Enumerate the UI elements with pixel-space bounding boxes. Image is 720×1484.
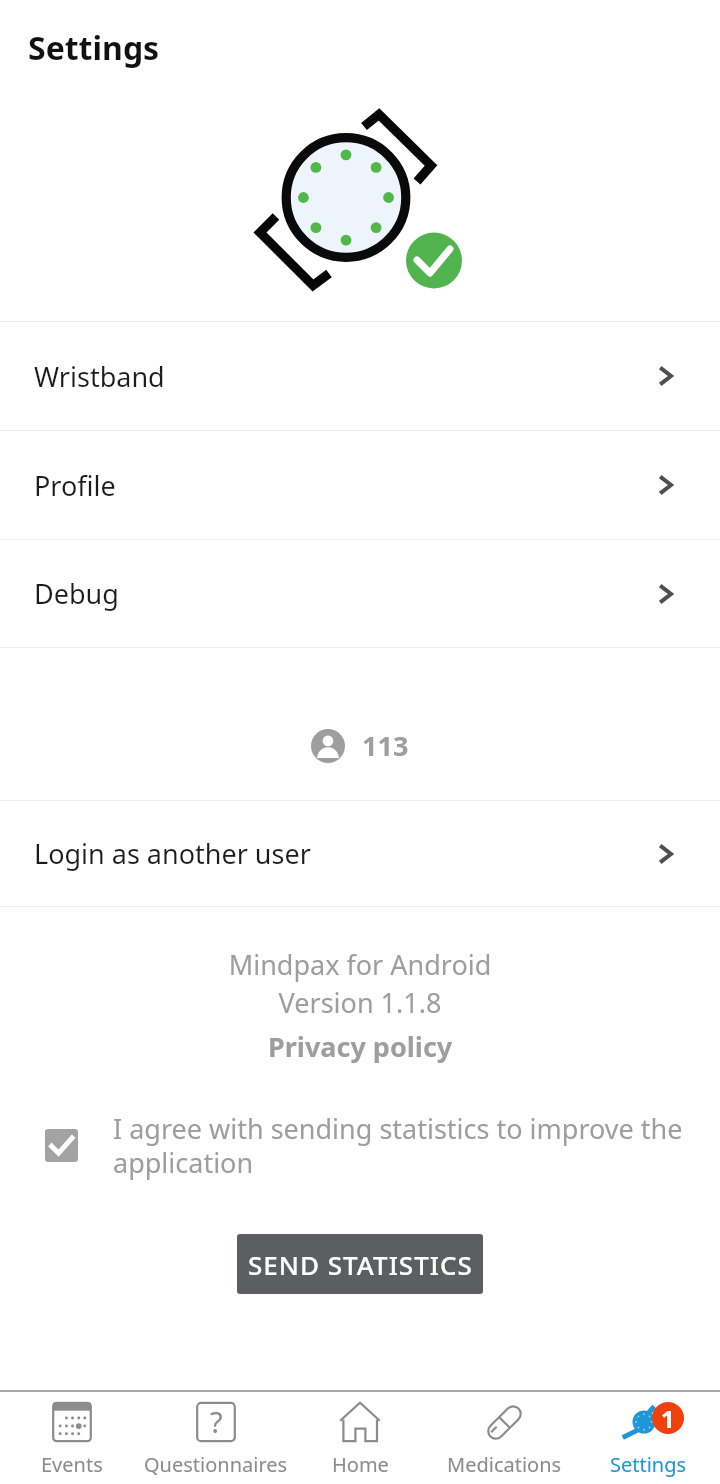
button[interactable]: Profile xyxy=(0,431,720,539)
button[interactable]: Medications xyxy=(432,1392,576,1484)
staticText: Events xyxy=(41,1451,103,1478)
button[interactable]: ? xyxy=(144,1392,288,1484)
button[interactable]: Home xyxy=(288,1392,432,1484)
button[interactable]: SEND STATISTICS xyxy=(237,1234,483,1294)
staticText: I agree with sending statistics to impro… xyxy=(113,1110,690,1181)
button[interactable]: Events xyxy=(0,1392,144,1484)
staticText: Privacy policy xyxy=(268,1028,453,1065)
staticText: SEND STATISTICS xyxy=(248,1247,473,1282)
button[interactable]: 1 xyxy=(576,1392,720,1484)
staticText: Wristband xyxy=(34,358,165,395)
staticText: ? xyxy=(210,1402,223,1441)
staticText: Debug xyxy=(34,575,119,612)
staticText: Medications xyxy=(447,1451,562,1478)
button[interactable]: Privacy policy xyxy=(258,1024,463,1069)
staticText: Questionnaires xyxy=(144,1451,288,1478)
staticText: Version 1.1.8 xyxy=(0,984,720,1021)
staticText: Settings xyxy=(28,26,160,70)
button[interactable]: Debug xyxy=(0,540,720,647)
staticText: Mindpax for Android xyxy=(0,946,720,983)
staticText: Home xyxy=(332,1451,389,1478)
staticText: 1 xyxy=(661,1402,675,1434)
button[interactable]: Wristband xyxy=(0,322,720,430)
button[interactable]: User 113 xyxy=(311,727,409,764)
staticText: 113 xyxy=(362,727,409,764)
staticText: Profile xyxy=(34,467,116,504)
button[interactable]: I agree with sending statistics xyxy=(45,1129,78,1162)
staticText: Settings xyxy=(610,1451,687,1478)
button[interactable]: Login as another user xyxy=(0,801,720,906)
staticText: Login as another user xyxy=(34,835,311,872)
